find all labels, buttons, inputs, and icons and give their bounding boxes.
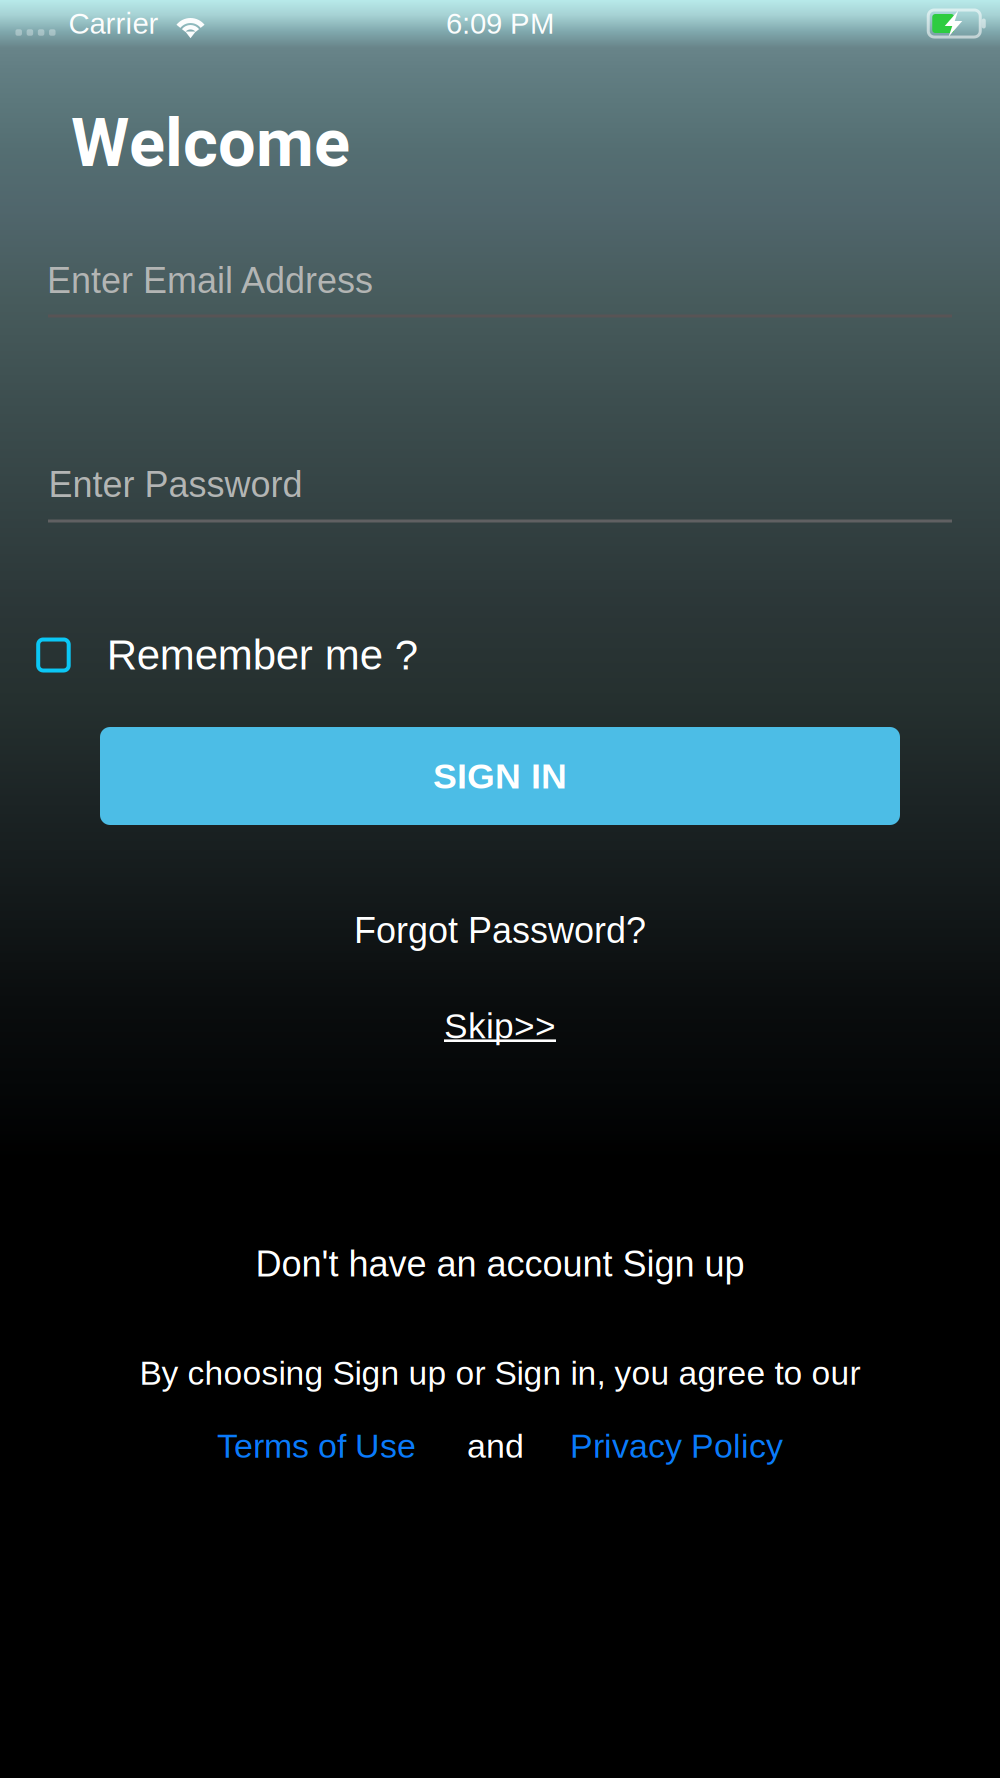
staticText: Privacy Policy xyxy=(570,1427,783,1465)
staticText: Skip>> xyxy=(444,1006,556,1046)
staticText: Enter Email Address xyxy=(47,260,373,301)
staticText: Remember me ? xyxy=(107,631,418,678)
staticText: Enter Password xyxy=(48,464,302,505)
staticText: Carrier xyxy=(68,7,158,40)
staticText: and xyxy=(467,1427,524,1465)
staticText: By choosing Sign up or Sign in, you agre… xyxy=(139,1354,860,1392)
button[interactable]: Remember me ? xyxy=(36,623,456,687)
staticText: Welcome xyxy=(71,96,350,194)
button[interactable]: Skip>> xyxy=(370,996,630,1056)
button[interactable]: SIGN IN xyxy=(100,727,900,825)
staticText: Forgot Password? xyxy=(354,910,646,951)
button[interactable]: Don't have an account Sign up xyxy=(190,1235,810,1293)
button[interactable]: Privacy Policy xyxy=(570,1417,783,1475)
staticText: Don't have an account Sign up xyxy=(255,1244,744,1284)
staticText: Terms of Use xyxy=(217,1427,416,1465)
button[interactable]: Terms of Use xyxy=(217,1417,416,1475)
staticText: SIGN IN xyxy=(433,756,567,796)
button[interactable]: Forgot Password? xyxy=(290,900,710,960)
staticText: 6:09 PM xyxy=(446,7,554,40)
